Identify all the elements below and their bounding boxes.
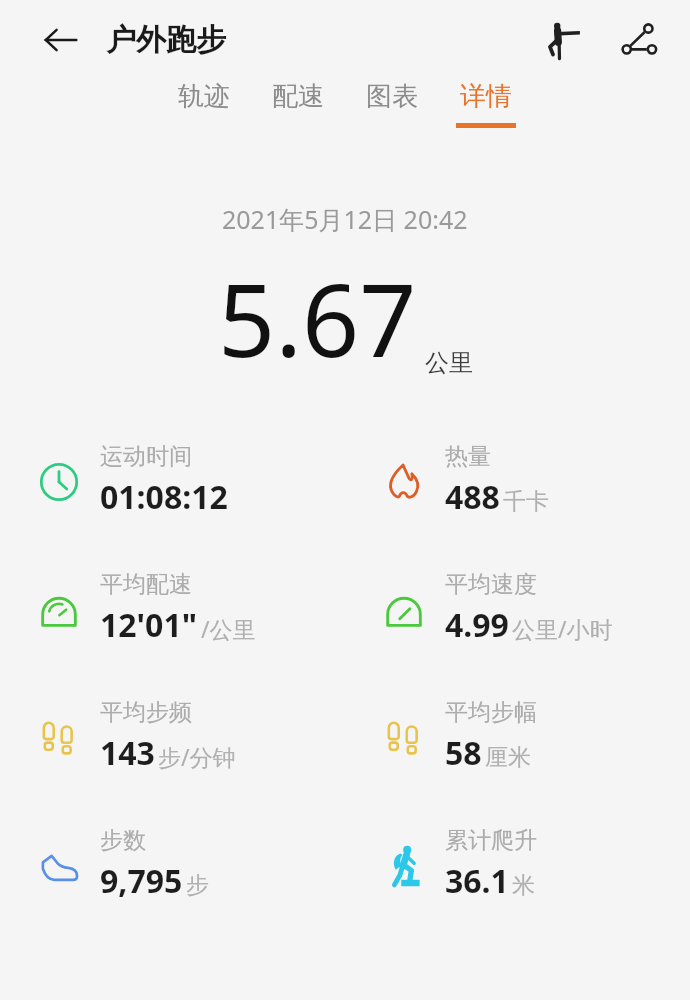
button[interactable]: 平均步幅 bbox=[345, 688, 690, 816]
staticText: 36.1 bbox=[445, 859, 509, 903]
button[interactable]: Workout type bbox=[534, 13, 588, 67]
button[interactable]: 平均速度 bbox=[345, 560, 690, 688]
staticText: 4.99 bbox=[445, 603, 509, 647]
staticText: 平均步幅 bbox=[445, 698, 537, 727]
staticText: 步/分钟 bbox=[158, 741, 236, 772]
button[interactable]: 轨迹 bbox=[157, 80, 251, 156]
button[interactable]: 平均步频 bbox=[0, 688, 345, 816]
staticText: 户外跑步 bbox=[106, 21, 226, 59]
button[interactable]: 详情 bbox=[439, 80, 533, 156]
staticText: 厘米 bbox=[485, 743, 531, 772]
staticText: 12'01" bbox=[100, 603, 198, 647]
button[interactable]: 配速 bbox=[251, 80, 345, 156]
button[interactable]: 热量 bbox=[345, 432, 690, 560]
button[interactable]: 平均配速 bbox=[0, 560, 345, 688]
staticText: 运动时间 bbox=[100, 442, 192, 471]
staticText: /公里 bbox=[201, 613, 256, 644]
staticText: 01:08:12 bbox=[100, 475, 228, 519]
staticText: 累计爬升 bbox=[445, 826, 537, 855]
button[interactable]: Back bbox=[34, 14, 86, 66]
staticText: 5.67 bbox=[218, 250, 417, 386]
staticText: 米 bbox=[512, 871, 535, 900]
button[interactable]: 图表 bbox=[345, 80, 439, 156]
staticText: 配速 bbox=[272, 80, 324, 113]
staticText: 58 bbox=[445, 731, 482, 775]
staticText: 平均步频 bbox=[100, 698, 192, 727]
button[interactable]: 运动时间 bbox=[0, 432, 345, 560]
staticText: 千卡 bbox=[503, 487, 549, 516]
staticText: 2021年5月12日 20:42 bbox=[222, 202, 468, 236]
staticText: 公里 bbox=[425, 348, 473, 378]
button[interactable]: 步数 bbox=[0, 816, 345, 944]
staticText: 488 bbox=[445, 475, 500, 519]
staticText: 图表 bbox=[366, 80, 418, 113]
staticText: 公里/小时 bbox=[512, 613, 613, 644]
button[interactable]: Share bbox=[612, 13, 666, 67]
staticText: 步数 bbox=[100, 826, 146, 855]
staticText: 轨迹 bbox=[178, 80, 230, 113]
staticText: 143 bbox=[100, 731, 155, 775]
staticText: 平均速度 bbox=[445, 570, 537, 599]
staticText: 热量 bbox=[445, 442, 491, 471]
button[interactable]: 累计爬升 bbox=[345, 816, 690, 944]
staticText: 9,795 bbox=[100, 859, 183, 903]
staticText: 详情 bbox=[460, 80, 512, 113]
staticText: 步 bbox=[186, 871, 209, 900]
staticText: 平均配速 bbox=[100, 570, 192, 599]
